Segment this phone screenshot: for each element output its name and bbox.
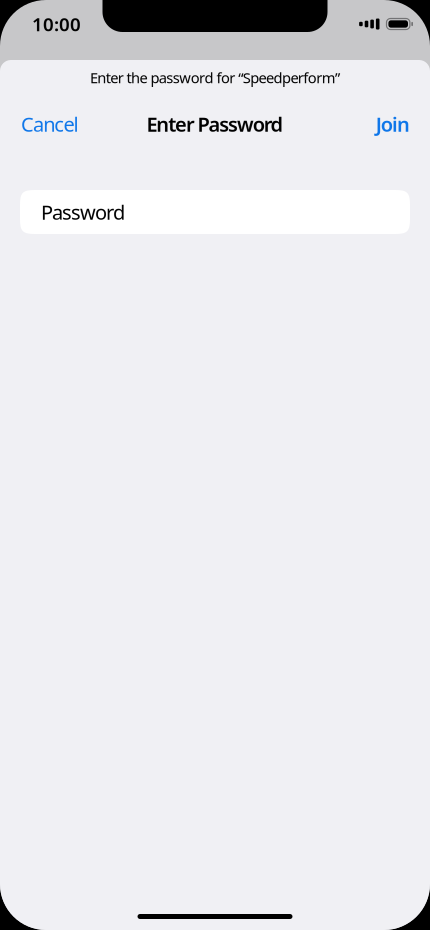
staticText: Enter the password for “Speedperform” — [90, 68, 340, 87]
staticText: Join — [376, 111, 410, 137]
button[interactable]: Join — [371, 99, 415, 149]
button[interactable]: Cancel — [16, 99, 83, 149]
staticText: Password — [41, 199, 125, 225]
staticText: 10:00 — [32, 12, 81, 36]
staticText: Enter Password — [146, 111, 283, 137]
staticText: Cancel — [21, 111, 78, 137]
button[interactable]: Password — [20, 190, 410, 234]
